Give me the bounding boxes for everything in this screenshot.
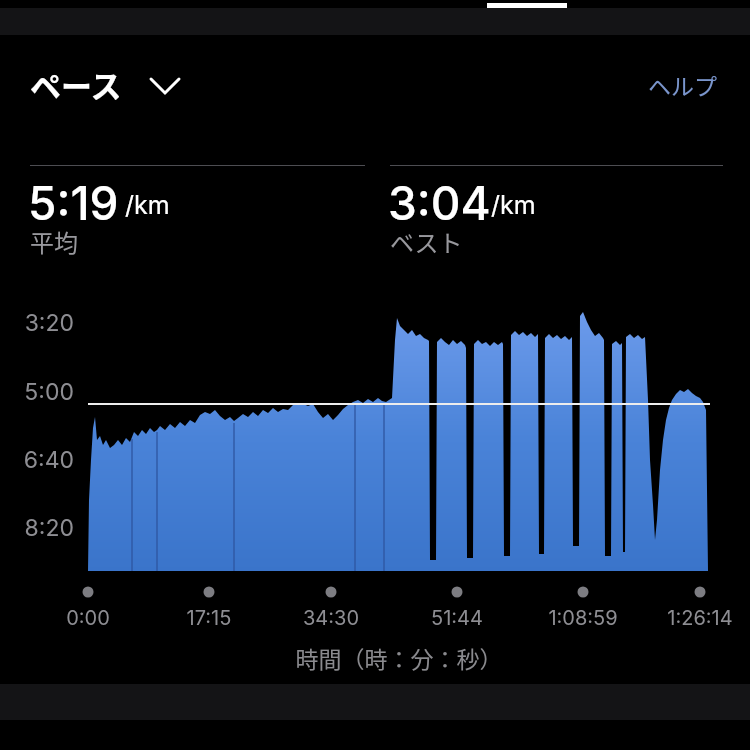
staticText: 時間（時：分：秒） xyxy=(49,641,749,750)
button[interactable]: ヘルプ xyxy=(640,66,732,102)
staticText: 5:19 xyxy=(28,175,119,231)
staticText: 34:30 xyxy=(271,606,391,630)
staticText: 0:00 xyxy=(28,606,148,630)
button[interactable]: ペース xyxy=(20,58,190,106)
staticText: ヘルプ xyxy=(648,68,717,101)
staticText: 51:44 xyxy=(397,606,517,630)
staticText: 平均 xyxy=(30,224,78,259)
staticText: 8:20 xyxy=(10,514,74,542)
staticText: 17:15 xyxy=(149,606,269,630)
staticText: 3:20 xyxy=(10,309,74,337)
staticText: /km xyxy=(491,190,536,220)
staticText: 5:00 xyxy=(10,378,74,406)
staticText: /km xyxy=(125,190,170,220)
staticText: ベスト xyxy=(390,224,463,259)
staticText: 6:40 xyxy=(10,446,74,474)
staticText: 3:04 xyxy=(388,175,491,231)
staticText: 1:26:14 xyxy=(640,606,750,630)
staticText: ペース xyxy=(30,62,122,107)
staticText: 1:08:59 xyxy=(523,606,643,630)
